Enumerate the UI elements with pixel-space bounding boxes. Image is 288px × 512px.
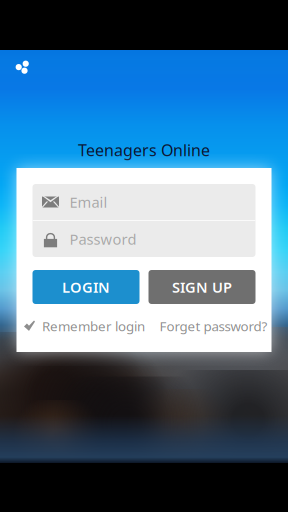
staticText: Forget password? <box>159 317 267 335</box>
staticText: Remember login <box>42 317 145 335</box>
button[interactable]: Remember login <box>24 315 145 337</box>
staticText: SIGN UP <box>172 277 232 297</box>
button[interactable]: Password <box>32 221 255 257</box>
staticText: LOGIN <box>62 277 110 297</box>
button[interactable]: Forget password? <box>159 315 267 337</box>
button[interactable]: Email <box>32 184 255 220</box>
staticText: Teenagers Online <box>78 139 210 161</box>
button[interactable]: SIGN UP <box>148 270 255 304</box>
button[interactable]: LOGIN <box>32 270 139 304</box>
staticText: Email <box>69 192 107 212</box>
staticText: Password <box>69 229 136 249</box>
